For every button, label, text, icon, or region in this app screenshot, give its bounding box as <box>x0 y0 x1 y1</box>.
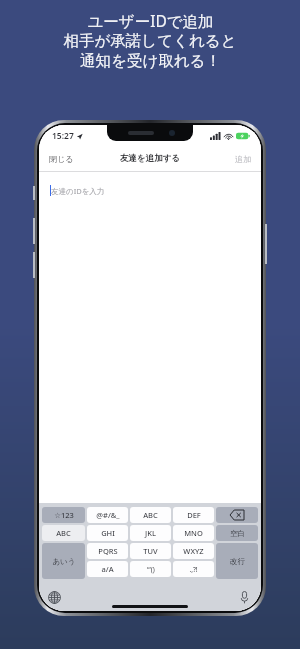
staticText: MNO <box>184 528 203 538</box>
button[interactable]: ☆123 <box>42 507 85 523</box>
button[interactable]: Switch keyboard language <box>45 588 63 606</box>
staticText: ABC <box>143 510 158 520</box>
button[interactable]: MNO <box>173 525 214 541</box>
button[interactable]: 改行 <box>216 543 258 579</box>
staticText: ‘“() <box>147 565 155 574</box>
button[interactable]: WXYZ <box>173 543 214 559</box>
staticText: 通知を受け取れる！ <box>80 51 221 71</box>
staticText: 15:27 <box>52 130 74 142</box>
button[interactable]: PQRS <box>87 543 128 559</box>
button[interactable]: ‘“() <box>130 561 171 577</box>
button[interactable]: 閉じる <box>39 149 84 169</box>
staticText: 友達のIDを入力 <box>51 186 105 196</box>
staticText: 友達を追加する <box>120 153 181 164</box>
button[interactable]: あいう <box>42 543 85 579</box>
staticText: ABC <box>56 528 71 538</box>
button[interactable]: 空白 <box>216 525 258 541</box>
button[interactable]: 追加 <box>225 149 261 169</box>
button[interactable]: DEF <box>173 507 214 523</box>
staticText: ユーザーIDで追加 <box>87 10 214 31</box>
staticText: 追加 <box>235 154 251 164</box>
button[interactable]: ABC <box>42 525 85 541</box>
button[interactable]: .,?! <box>173 561 214 577</box>
staticText: JKL <box>145 528 156 538</box>
button[interactable]: Delete <box>216 507 258 523</box>
staticText: PQRS <box>98 546 118 556</box>
staticText: 相手が承諾してくれると <box>63 31 237 51</box>
staticText: あいう <box>52 557 76 566</box>
staticText: .,?! <box>189 565 198 574</box>
staticText: 改行 <box>230 557 245 566</box>
staticText: 閉じる <box>49 154 74 164</box>
staticText: ☆123 <box>54 510 74 520</box>
staticText: @#/&_ <box>96 510 120 520</box>
button[interactable]: a/A <box>87 561 128 577</box>
button[interactable]: TUV <box>130 543 171 559</box>
staticText: DEF <box>187 510 201 520</box>
staticText: TUV <box>143 546 158 556</box>
button[interactable]: ABC <box>130 507 171 523</box>
button[interactable]: @#/&_ <box>87 507 128 523</box>
button[interactable]: JKL <box>130 525 171 541</box>
staticText: 空白 <box>230 529 245 538</box>
staticText: a/A <box>101 564 114 574</box>
button[interactable]: Dictation <box>235 588 253 606</box>
button[interactable]: GHI <box>87 525 128 541</box>
staticText: GHI <box>101 528 115 538</box>
staticText: WXYZ <box>183 546 204 556</box>
